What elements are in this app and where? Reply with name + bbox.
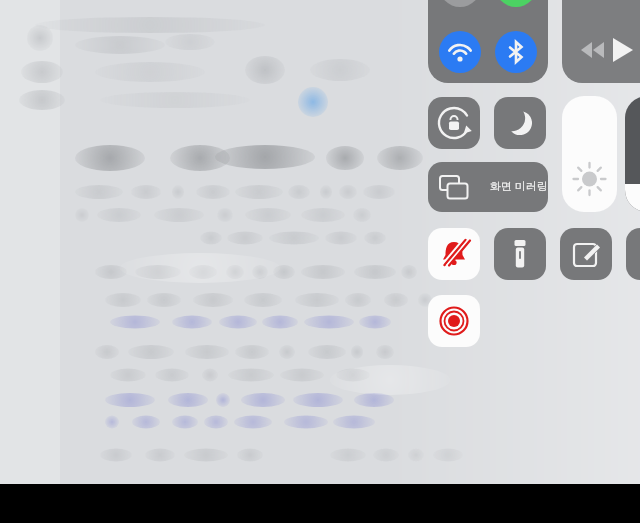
button[interactable]: Screen Recording — [428, 295, 480, 347]
button[interactable]: Brightness — [562, 96, 617, 212]
button[interactable]: Silent Mode — [428, 228, 480, 280]
button[interactable]: Do Not Disturb — [494, 97, 546, 149]
staticText: 화면 미러링 — [490, 178, 548, 193]
button[interactable] — [625, 96, 640, 212]
button[interactable]: Notes — [560, 228, 612, 280]
button[interactable] — [626, 228, 640, 280]
button[interactable]: Rotation Lock — [428, 97, 480, 149]
button[interactable]: Wi-Fi — [439, 31, 481, 73]
button[interactable]: Bluetooth — [495, 31, 537, 73]
button[interactable]: 화면 미러링 — [428, 162, 548, 212]
button[interactable]: Flashlight — [494, 228, 546, 280]
button[interactable] — [562, 0, 640, 83]
